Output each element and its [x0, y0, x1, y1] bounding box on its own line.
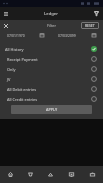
button[interactable]: 07/01/1970 [7, 33, 44, 37]
button[interactable]: RESET [81, 22, 99, 29]
button[interactable]: Menu [1, 9, 11, 19]
staticText: All Debit entries [7, 87, 37, 92]
button[interactable]: Home [0, 166, 20, 183]
staticText: Ledger [44, 11, 59, 17]
staticText: All Credit entries [7, 97, 38, 102]
button[interactable]: All Debit entries [0, 84, 103, 94]
button[interactable]: Receipt Payment [0, 54, 103, 64]
button[interactable]: Only [0, 64, 103, 74]
button[interactable]: Close [0, 20, 11, 31]
staticText: Only [7, 67, 16, 72]
button[interactable]: All Credit entries [0, 94, 103, 104]
button[interactable]: 07/03/2099 [58, 33, 96, 37]
button[interactable]: Filter [91, 8, 102, 19]
staticText: RESET [85, 23, 95, 28]
staticText: JV [7, 77, 11, 82]
staticText: 07/03/2099 [58, 33, 76, 37]
button[interactable]: Display [61, 166, 82, 183]
button[interactable]: Reports [40, 166, 61, 183]
staticText: APPLY [46, 107, 58, 112]
staticText: All History [5, 47, 24, 52]
button[interactable]: APPLY [11, 105, 92, 114]
button[interactable]: All History [0, 44, 103, 54]
button[interactable]: JV [0, 74, 103, 84]
staticText: Filter [47, 23, 57, 28]
button[interactable]: Purchase [20, 166, 40, 183]
staticText: 07/01/1970 [7, 33, 25, 37]
staticText: Receipt Payment [7, 57, 38, 62]
button[interactable]: Briefcase [82, 166, 103, 183]
